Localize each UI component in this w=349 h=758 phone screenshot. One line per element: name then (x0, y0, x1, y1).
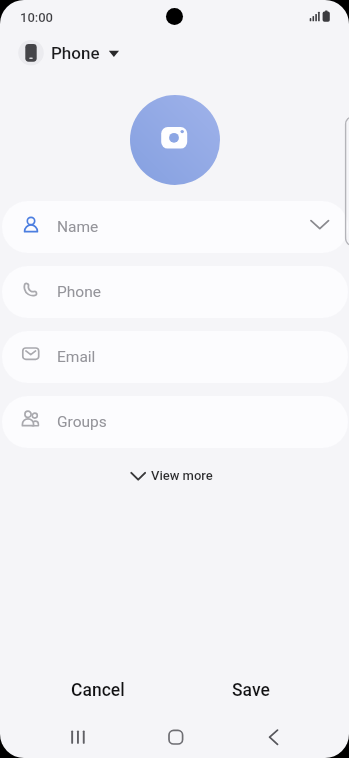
button[interactable]: Phone (2, 266, 348, 318)
staticText: 10:00 (20, 10, 54, 25)
button[interactable]: Name (2, 201, 348, 253)
button[interactable]: Groups (2, 396, 348, 448)
button[interactable]: Cancel (38, 673, 158, 708)
staticText: Email (57, 348, 96, 366)
staticText: Groups (57, 413, 107, 431)
button[interactable]: Email (2, 331, 348, 383)
staticText: Phone (57, 283, 101, 301)
button[interactable]: Save (191, 673, 311, 708)
staticText: Cancel (71, 680, 125, 701)
button[interactable] (48, 716, 108, 756)
button[interactable] (130, 95, 220, 185)
button[interactable] (244, 716, 304, 756)
staticText: Phone (51, 43, 100, 63)
button[interactable]: Phone (18, 39, 126, 67)
staticText: Save (232, 680, 270, 701)
button[interactable] (145, 716, 205, 756)
staticText: Name (57, 218, 99, 236)
button[interactable]: View more (124, 462, 244, 489)
staticText: View more (151, 468, 213, 483)
